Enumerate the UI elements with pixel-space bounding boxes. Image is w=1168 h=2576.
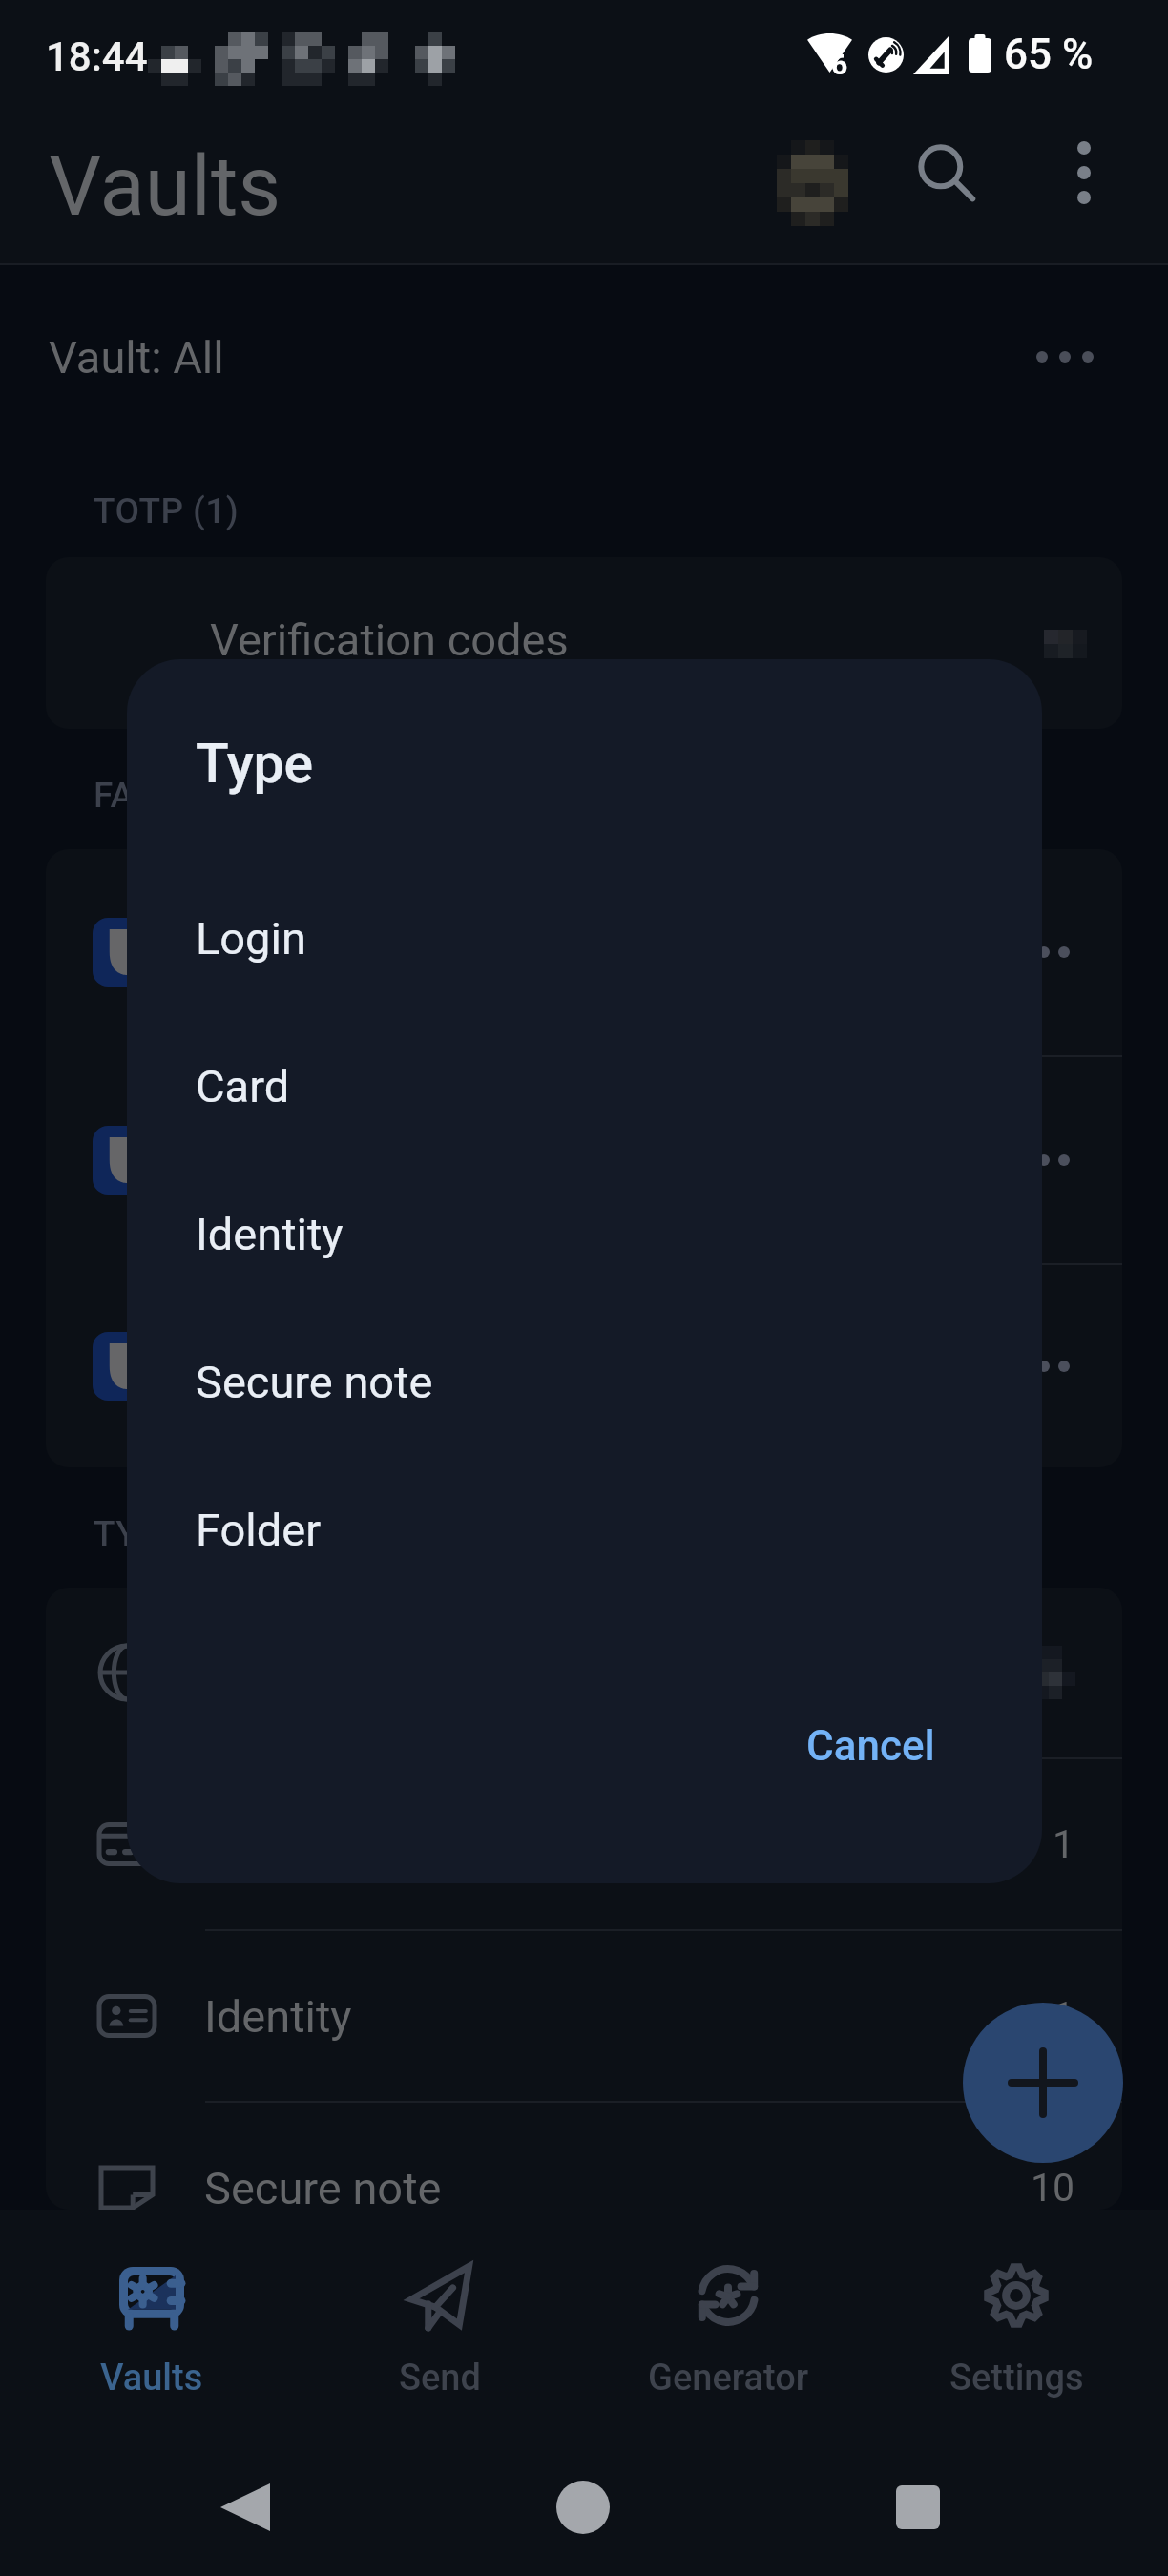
staticText: TOTP (1) xyxy=(94,490,239,531)
button[interactable]: Account xyxy=(735,114,878,258)
button[interactable]: Send xyxy=(296,2254,584,2406)
button[interactable]: Vault filter options xyxy=(992,307,1122,406)
staticText: Vaults xyxy=(100,2357,203,2399)
button[interactable]: Card xyxy=(127,1012,1042,1160)
button[interactable]: Add item xyxy=(963,2003,1123,2163)
button[interactable]: Item options xyxy=(46,1057,1122,1263)
staticText: 6 xyxy=(831,48,848,81)
staticText: 1 xyxy=(1053,1993,1075,2039)
staticText: FAVORITES xyxy=(94,775,278,816)
staticText: Cancel xyxy=(806,1721,935,1771)
button[interactable]: Home xyxy=(524,2448,642,2566)
staticText: Verification codes xyxy=(210,613,569,666)
staticText: Generator xyxy=(648,2357,809,2399)
button[interactable]: Settings xyxy=(872,2254,1160,2406)
staticText: Send xyxy=(399,2357,481,2399)
staticText: Folder xyxy=(196,1504,322,1556)
button[interactable]: Identity xyxy=(127,1160,1042,1308)
staticText: Secure note xyxy=(196,1356,433,1408)
button[interactable]: Card xyxy=(46,1759,1122,1929)
button[interactable]: Secure note xyxy=(46,2103,1122,2210)
staticText: Vaults xyxy=(49,137,282,235)
staticText: 65 % xyxy=(1004,30,1094,79)
button[interactable]: Cancel xyxy=(783,1704,958,1788)
staticText: 1 xyxy=(1053,1821,1075,1867)
button[interactable]: Search xyxy=(901,127,992,218)
button[interactable]: Back xyxy=(186,2448,304,2566)
staticText: Identity xyxy=(196,1208,344,1260)
button[interactable]: More options xyxy=(1038,127,1130,218)
button[interactable]: Folder xyxy=(127,1456,1042,1604)
staticText: Vault: All xyxy=(49,331,224,384)
button[interactable]: Secure note xyxy=(127,1308,1042,1456)
button[interactable]: Login xyxy=(127,864,1042,1012)
staticText: Settings xyxy=(949,2357,1084,2399)
button[interactable]: Item options xyxy=(46,1265,1122,1467)
staticText: 18:44 xyxy=(46,33,148,80)
staticText: TYPES xyxy=(94,1513,203,1554)
button[interactable]: Vaults xyxy=(8,2254,296,2406)
button[interactable]: Generator xyxy=(584,2254,872,2406)
button[interactable]: Identity xyxy=(46,1931,1122,2101)
button[interactable]: Item options xyxy=(996,1319,1092,1414)
staticText: Login xyxy=(196,912,306,965)
button[interactable]: Item options xyxy=(996,1112,1092,1208)
button[interactable]: Recent apps xyxy=(859,2448,977,2566)
staticText: Identity xyxy=(204,1990,352,2043)
staticText: 10 xyxy=(1031,2165,1075,2210)
staticText: Type xyxy=(196,732,314,796)
button[interactable] xyxy=(46,557,1122,729)
staticText: Card xyxy=(196,1060,290,1112)
button[interactable]: Item options xyxy=(996,904,1092,1000)
button[interactable]: Item options xyxy=(46,849,1122,1055)
staticText: Secure note xyxy=(204,2162,442,2210)
button[interactable]: Login xyxy=(46,1588,1122,1757)
